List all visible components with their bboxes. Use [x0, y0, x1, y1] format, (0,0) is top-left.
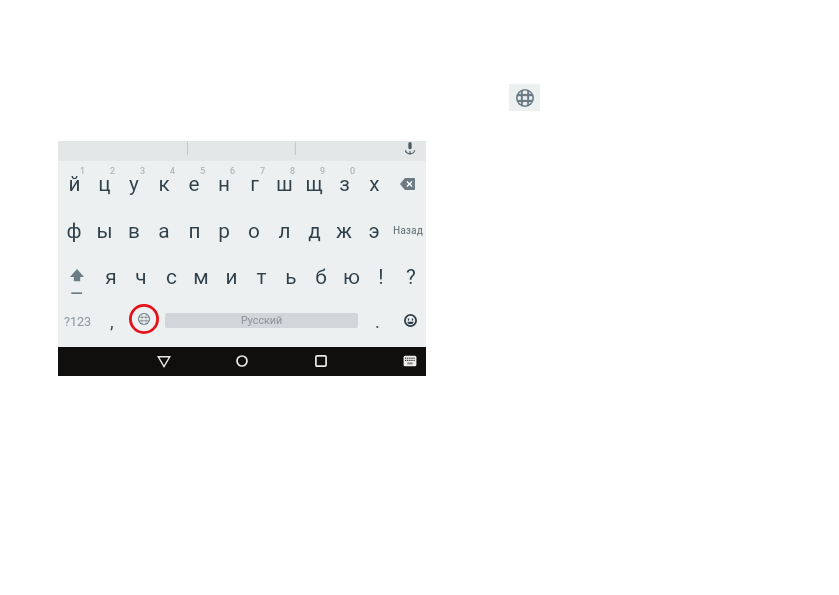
button[interactable]: ы	[89, 208, 119, 255]
button[interactable]: ф	[59, 208, 89, 255]
button[interactable]: ч	[126, 254, 156, 301]
staticText: и	[225, 265, 238, 289]
button[interactable]: к	[149, 161, 179, 208]
staticText: к	[158, 172, 170, 196]
staticText: ц	[98, 172, 111, 196]
button[interactable]: о	[239, 208, 269, 255]
button[interactable]: Back	[150, 347, 178, 376]
button[interactable]: ш	[269, 161, 299, 208]
staticText: ,	[110, 311, 114, 333]
button[interactable]: ,	[98, 301, 126, 348]
staticText: л	[278, 219, 291, 243]
staticText: ю	[343, 265, 360, 289]
button[interactable]: ?	[396, 254, 426, 301]
staticText: 9	[320, 166, 326, 177]
button[interactable]: Shift	[58, 254, 96, 301]
button[interactable]: Change keyboard language	[126, 301, 162, 348]
staticText: 4	[170, 166, 176, 177]
staticText: 6	[230, 166, 236, 177]
button[interactable]: ?123	[58, 301, 97, 348]
button[interactable]: Назад	[389, 208, 426, 255]
staticText: м	[193, 265, 209, 289]
button[interactable]: щ	[299, 161, 329, 208]
staticText: о	[248, 219, 260, 243]
staticText: ы	[96, 219, 113, 243]
staticText: в	[128, 219, 140, 243]
button[interactable]: г	[239, 161, 269, 208]
staticText: 1	[80, 166, 86, 177]
staticText: .	[375, 311, 380, 333]
button[interactable]: Change keyboard language	[509, 84, 540, 111]
button[interactable]: х	[359, 161, 389, 208]
staticText: Назад	[393, 223, 423, 237]
button[interactable]: а	[149, 208, 179, 255]
button[interactable]: р	[209, 208, 239, 255]
staticText: п	[188, 219, 201, 243]
button[interactable]: л	[269, 208, 299, 255]
staticText: т	[256, 265, 267, 289]
staticText: ?	[406, 265, 416, 289]
button[interactable]: д	[299, 208, 329, 255]
button[interactable]: м	[186, 254, 216, 301]
staticText: ?123	[64, 314, 92, 329]
staticText: ч	[135, 265, 147, 289]
staticText: ж	[336, 219, 352, 243]
staticText: !	[378, 265, 384, 289]
button[interactable]: з	[329, 161, 359, 208]
button[interactable]: в	[119, 208, 149, 255]
button[interactable]: н	[209, 161, 239, 208]
button[interactable]: е	[179, 161, 209, 208]
button[interactable]: э	[359, 208, 389, 255]
staticText: я	[105, 265, 117, 289]
staticText: с	[166, 265, 177, 289]
staticText: Русский	[241, 314, 283, 327]
button[interactable]: Switch input method	[396, 347, 424, 376]
staticText: ь	[285, 265, 297, 289]
staticText: щ	[305, 172, 323, 196]
staticText: н	[218, 172, 230, 196]
staticText: ф	[66, 219, 82, 243]
button[interactable]: Voice input	[395, 141, 425, 161]
button[interactable]: ю	[336, 254, 366, 301]
button[interactable]: и	[216, 254, 246, 301]
staticText: х	[369, 172, 380, 196]
staticText: ш	[276, 172, 293, 196]
staticText: й	[68, 172, 81, 196]
button[interactable]: Emoji	[394, 301, 426, 348]
button[interactable]: !	[366, 254, 396, 301]
button[interactable]: Русский	[165, 313, 358, 328]
staticText: з	[339, 172, 350, 196]
button[interactable]: Backspace	[389, 161, 426, 208]
staticText: б	[315, 265, 327, 289]
staticText: у	[129, 172, 139, 196]
staticText: 5	[200, 166, 206, 177]
staticText: е	[188, 172, 200, 196]
staticText: э	[368, 219, 380, 243]
button[interactable]: й	[59, 161, 89, 208]
button[interactable]: я	[96, 254, 126, 301]
button[interactable]: т	[246, 254, 276, 301]
staticText: 7	[260, 166, 266, 177]
staticText: 3	[140, 166, 146, 177]
staticText: а	[158, 219, 170, 243]
button[interactable]: ж	[329, 208, 359, 255]
button[interactable]: у	[119, 161, 149, 208]
staticText: 0	[350, 166, 356, 177]
staticText: г	[250, 172, 259, 196]
button[interactable]: б	[306, 254, 336, 301]
staticText: д	[308, 219, 321, 243]
staticText: р	[218, 219, 230, 243]
button[interactable]: ь	[276, 254, 306, 301]
staticText: 8	[290, 166, 296, 177]
button[interactable]: .	[361, 301, 393, 348]
button[interactable]: ц	[89, 161, 119, 208]
button[interactable]: с	[156, 254, 186, 301]
button[interactable]: п	[179, 208, 209, 255]
button[interactable]: Recent apps	[307, 347, 335, 376]
staticText: 2	[110, 166, 116, 177]
button[interactable]: Home	[228, 347, 256, 376]
